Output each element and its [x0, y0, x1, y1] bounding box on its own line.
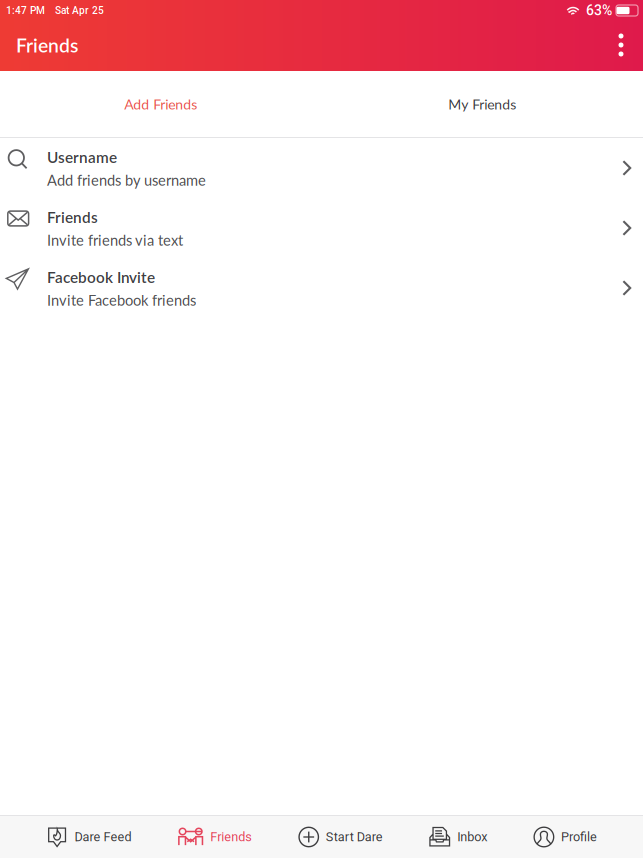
button[interactable]: Start Dare: [298, 816, 383, 858]
button[interactable]: Friends: [0, 198, 643, 258]
staticText: Sat Apr 25: [55, 5, 104, 16]
staticText: Invite Facebook friends: [47, 291, 196, 309]
button[interactable]: Facebook Invite: [0, 258, 643, 318]
staticText: Facebook Invite: [47, 268, 155, 286]
staticText: 63%: [586, 2, 612, 19]
button[interactable]: Dare Feed: [46, 816, 132, 858]
staticText: Inbox: [457, 830, 487, 844]
staticText: Username: [47, 148, 117, 166]
staticText: Dare Feed: [75, 830, 132, 844]
button[interactable]: Inbox: [429, 816, 487, 858]
staticText: Start Dare: [326, 830, 383, 844]
staticText: My Friends: [448, 96, 516, 112]
button[interactable]: Username: [0, 138, 643, 198]
staticText: Friends: [47, 208, 98, 226]
button[interactable]: Add Friends: [0, 71, 321, 137]
staticText: 1:47 PM: [6, 5, 45, 16]
staticText: Friends: [210, 830, 252, 844]
button[interactable]: More options: [604, 23, 638, 67]
button[interactable]: Profile: [533, 816, 597, 858]
staticText: Invite friends via text: [47, 231, 183, 249]
staticText: Friends: [16, 33, 78, 57]
staticText: Profile: [561, 830, 597, 844]
button[interactable]: Friends: [178, 816, 252, 858]
staticText: Add Friends: [124, 96, 197, 112]
staticText: Add friends by username: [47, 171, 206, 189]
button[interactable]: My Friends: [321, 71, 643, 137]
